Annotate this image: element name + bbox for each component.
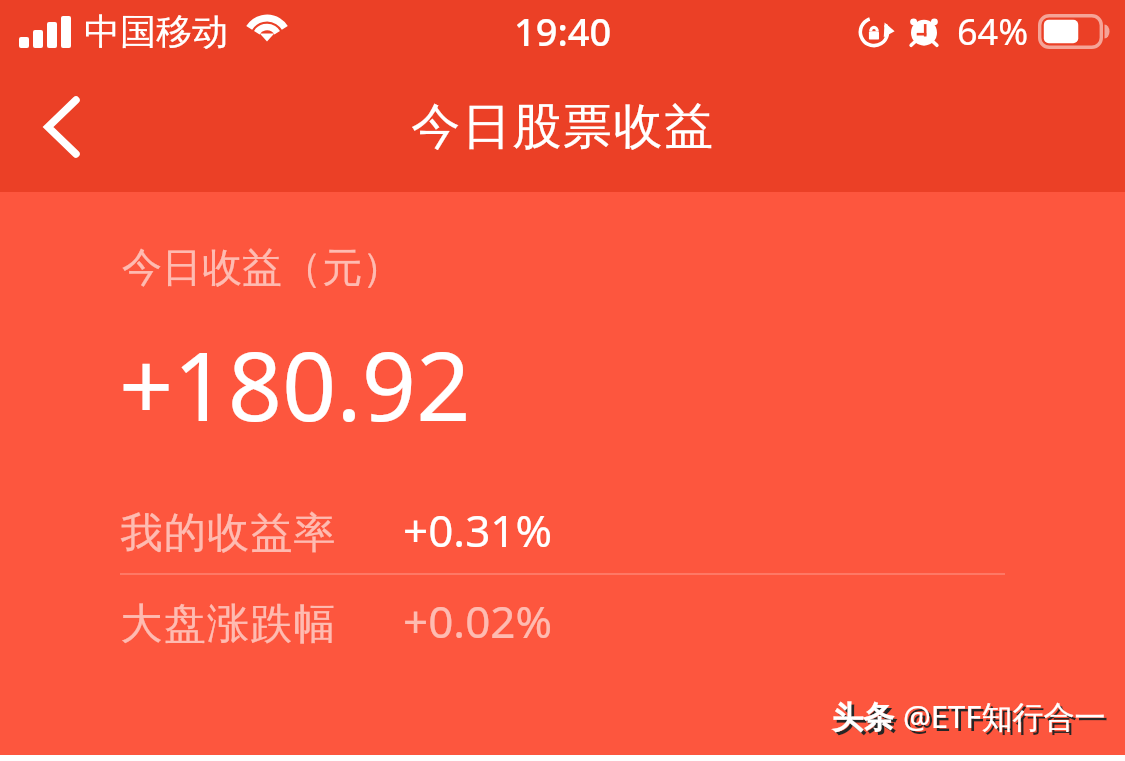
staticText: 头条 [832,698,894,737]
staticText: 今日股票收益 [411,96,715,158]
staticText: @ETF知行合一 [903,695,1106,737]
staticText: @ETF知行合一 [906,698,1109,740]
staticText: 中国移动 [84,9,228,54]
staticText: 64% [957,7,1029,56]
staticText: 今日收益（元） [122,242,402,292]
button[interactable]: 大盘涨跌幅 [120,585,1005,647]
staticText: 19:40 [514,5,612,57]
staticText: 大盘涨跌幅 [120,598,336,651]
button[interactable]: 我的收益率 [120,494,1005,556]
staticText: +0.02% [403,591,553,651]
staticText: 我的收益率 [120,507,336,560]
staticText: +180.92 [119,319,471,448]
button[interactable]: Back [0,62,110,192]
staticText: 头条 [835,701,897,740]
staticText: +0.31% [403,500,553,560]
